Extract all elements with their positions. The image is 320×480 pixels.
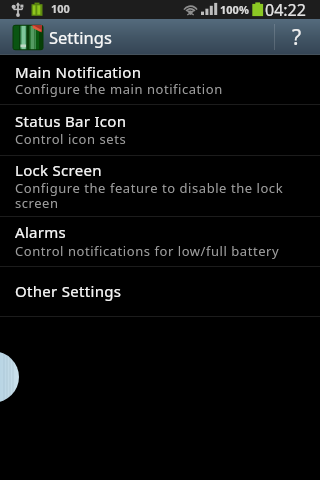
button[interactable]: Main Notification <box>0 55 320 104</box>
staticText: Status Bar Icon <box>15 111 127 131</box>
button[interactable]: Lock Screen <box>0 156 320 216</box>
staticText: 04:22 <box>265 0 306 18</box>
staticText: 100% <box>220 2 249 17</box>
button[interactable]: Help <box>274 19 320 55</box>
staticText: Lock Screen <box>15 160 102 180</box>
staticText: 100 <box>51 1 70 16</box>
button[interactable]: Other Settings <box>0 267 320 316</box>
staticText: ? <box>292 23 302 52</box>
staticText: Control icon sets <box>15 130 127 148</box>
staticText: Other Settings <box>15 281 122 301</box>
staticText: Main Notification <box>15 62 142 82</box>
staticText: Configure the feature to disable the loc… <box>15 179 304 212</box>
staticText: Control notifications for low/full batte… <box>15 242 280 260</box>
button[interactable]: Status Bar Icon <box>0 105 320 155</box>
button[interactable]: Alarms <box>0 217 320 266</box>
staticText: Alarms <box>15 222 67 242</box>
staticText: Settings <box>49 26 112 48</box>
staticText: Configure the main notification <box>15 80 223 98</box>
